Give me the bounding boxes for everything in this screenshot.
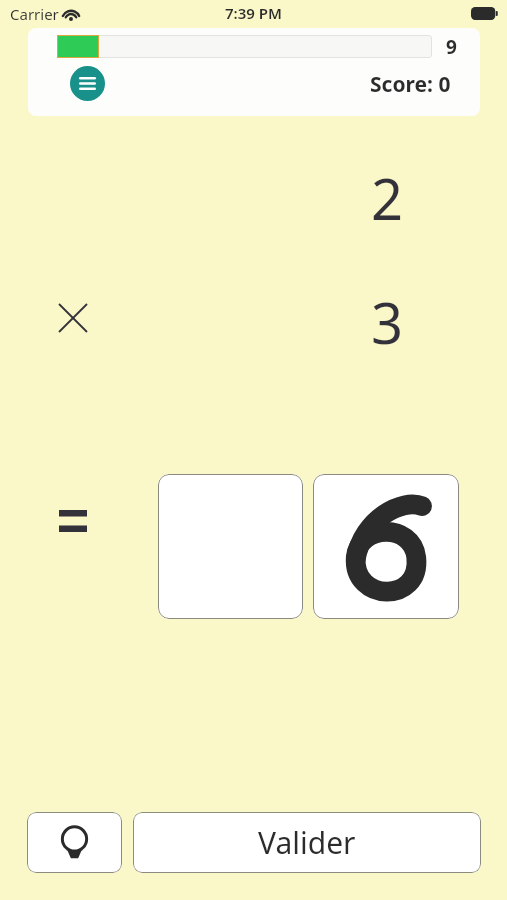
staticText: 9: [446, 34, 457, 60]
button[interactable]: Answer slot: [158, 474, 303, 619]
button[interactable]: Hint: [27, 812, 122, 873]
staticText: Carrier: [10, 4, 59, 24]
staticText: Score: 0: [370, 70, 451, 99]
staticText: 7:39 PM: [225, 3, 282, 23]
button[interactable]: Menu: [70, 66, 105, 101]
staticText: Valider: [258, 822, 356, 863]
button[interactable]: Valider: [133, 812, 481, 873]
staticText: 2: [360, 160, 414, 236]
staticText: 3: [360, 284, 414, 360]
button[interactable]: Digit 6: [313, 474, 459, 619]
